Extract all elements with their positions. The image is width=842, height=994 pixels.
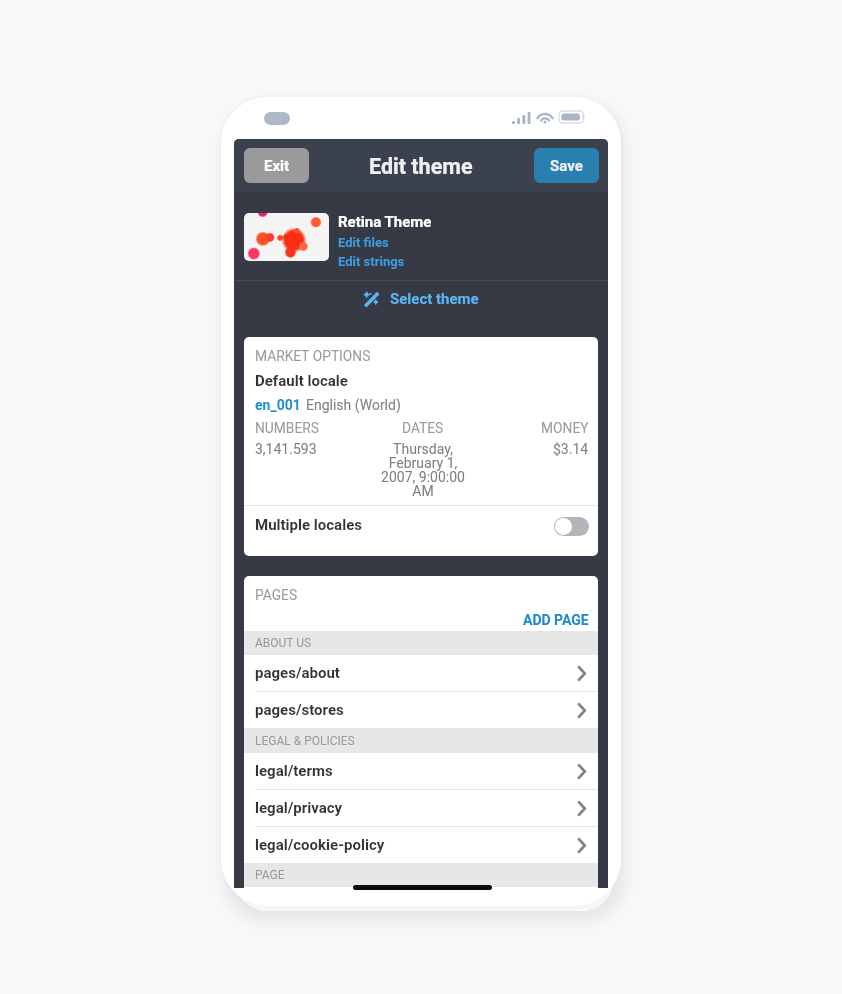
- staticText: DATES: [402, 420, 444, 436]
- staticText: 3,141.593: [255, 441, 317, 457]
- staticText: legal/privacy: [255, 799, 343, 817]
- staticText: Multiple locales: [255, 516, 362, 534]
- staticText: PAGE: [255, 868, 285, 882]
- staticText: ADD PAGE: [523, 612, 589, 628]
- staticText: Save: [550, 157, 583, 175]
- button[interactable]: Select theme: [234, 281, 608, 317]
- staticText: ABOUT US: [255, 636, 312, 650]
- button[interactable]: Theme preview: [244, 213, 329, 261]
- staticText: MARKET OPTIONS: [255, 348, 371, 364]
- button[interactable]: Edit files: [338, 235, 389, 250]
- button[interactable]: Save: [534, 148, 599, 183]
- staticText: en_001: [255, 397, 301, 413]
- button[interactable]: legal/privacy: [244, 790, 598, 826]
- staticText: legal/cookie-policy: [255, 836, 385, 854]
- staticText: English (World): [306, 397, 401, 413]
- button[interactable]: Exit: [244, 148, 309, 183]
- staticText: Select theme: [390, 290, 479, 308]
- button[interactable]: Multiple locales: [244, 506, 598, 544]
- staticText: Retina Theme: [338, 213, 432, 231]
- button[interactable]: legal/terms: [244, 753, 598, 789]
- button[interactable]: legal/cookie-policy: [244, 827, 598, 863]
- staticText: Edit theme: [369, 154, 473, 179]
- staticText: Thursday, February 1, 2007, 9:00:00 AM: [380, 441, 466, 500]
- button[interactable]: Edit strings: [338, 254, 405, 269]
- staticText: MONEY: [541, 420, 589, 436]
- staticText: PAGES: [255, 587, 298, 603]
- staticText: $3.14: [553, 441, 589, 457]
- button[interactable]: pages/about: [244, 655, 598, 691]
- button[interactable]: pages/stores: [244, 692, 598, 728]
- staticText: Exit: [264, 157, 290, 175]
- button[interactable]: ADD PAGE: [514, 608, 598, 631]
- staticText: pages/stores: [255, 701, 344, 719]
- staticText: pages/about: [255, 664, 340, 682]
- staticText: legal/terms: [255, 762, 333, 780]
- staticText: NUMBERS: [255, 420, 319, 436]
- staticText: LEGAL & POLICIES: [255, 734, 355, 748]
- staticText: Default locale: [255, 372, 348, 390]
